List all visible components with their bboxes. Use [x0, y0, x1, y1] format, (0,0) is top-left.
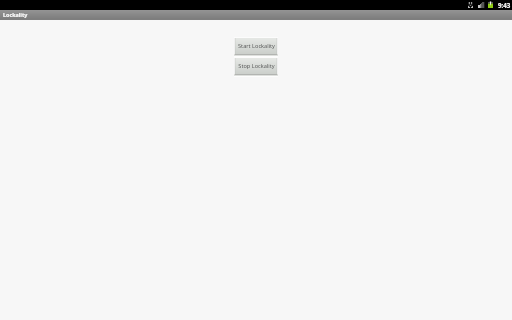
- button[interactable]: Stop Lockality: [234, 57, 278, 77]
- other: No SIM card: [468, 2, 473, 8]
- staticText: 9:43: [498, 1, 511, 9]
- other: Signal strength: [478, 2, 484, 8]
- staticText: Start Lockality: [238, 42, 275, 50]
- other: Battery charging: [488, 1, 493, 8]
- staticText: Stop Lockality: [238, 62, 275, 70]
- staticText: Lockality: [3, 11, 28, 18]
- button[interactable]: Start Lockality: [234, 37, 278, 57]
